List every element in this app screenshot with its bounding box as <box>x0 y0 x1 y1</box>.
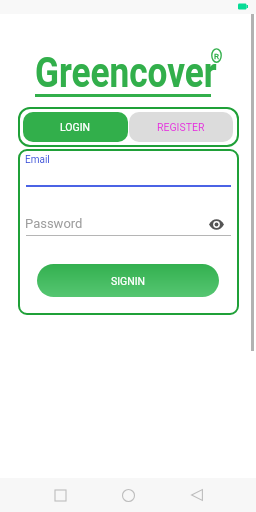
staticText: REGISTER <box>157 121 205 133</box>
staticText: Greencover <box>35 47 217 97</box>
button[interactable]: Show password <box>208 216 224 232</box>
button[interactable]: Recents <box>40 478 81 512</box>
button[interactable]: REGISTER <box>129 112 233 142</box>
button[interactable]: SIGNIN <box>37 264 219 297</box>
button[interactable]: LOGIN <box>23 112 128 142</box>
staticText: LOGIN <box>60 121 91 133</box>
staticText: SIGNIN <box>111 275 146 287</box>
button[interactable]: Home <box>108 478 149 512</box>
staticText: R <box>214 52 219 61</box>
button[interactable]: Back <box>176 478 217 512</box>
staticText: Password <box>25 216 83 231</box>
staticText: Email <box>25 154 50 166</box>
